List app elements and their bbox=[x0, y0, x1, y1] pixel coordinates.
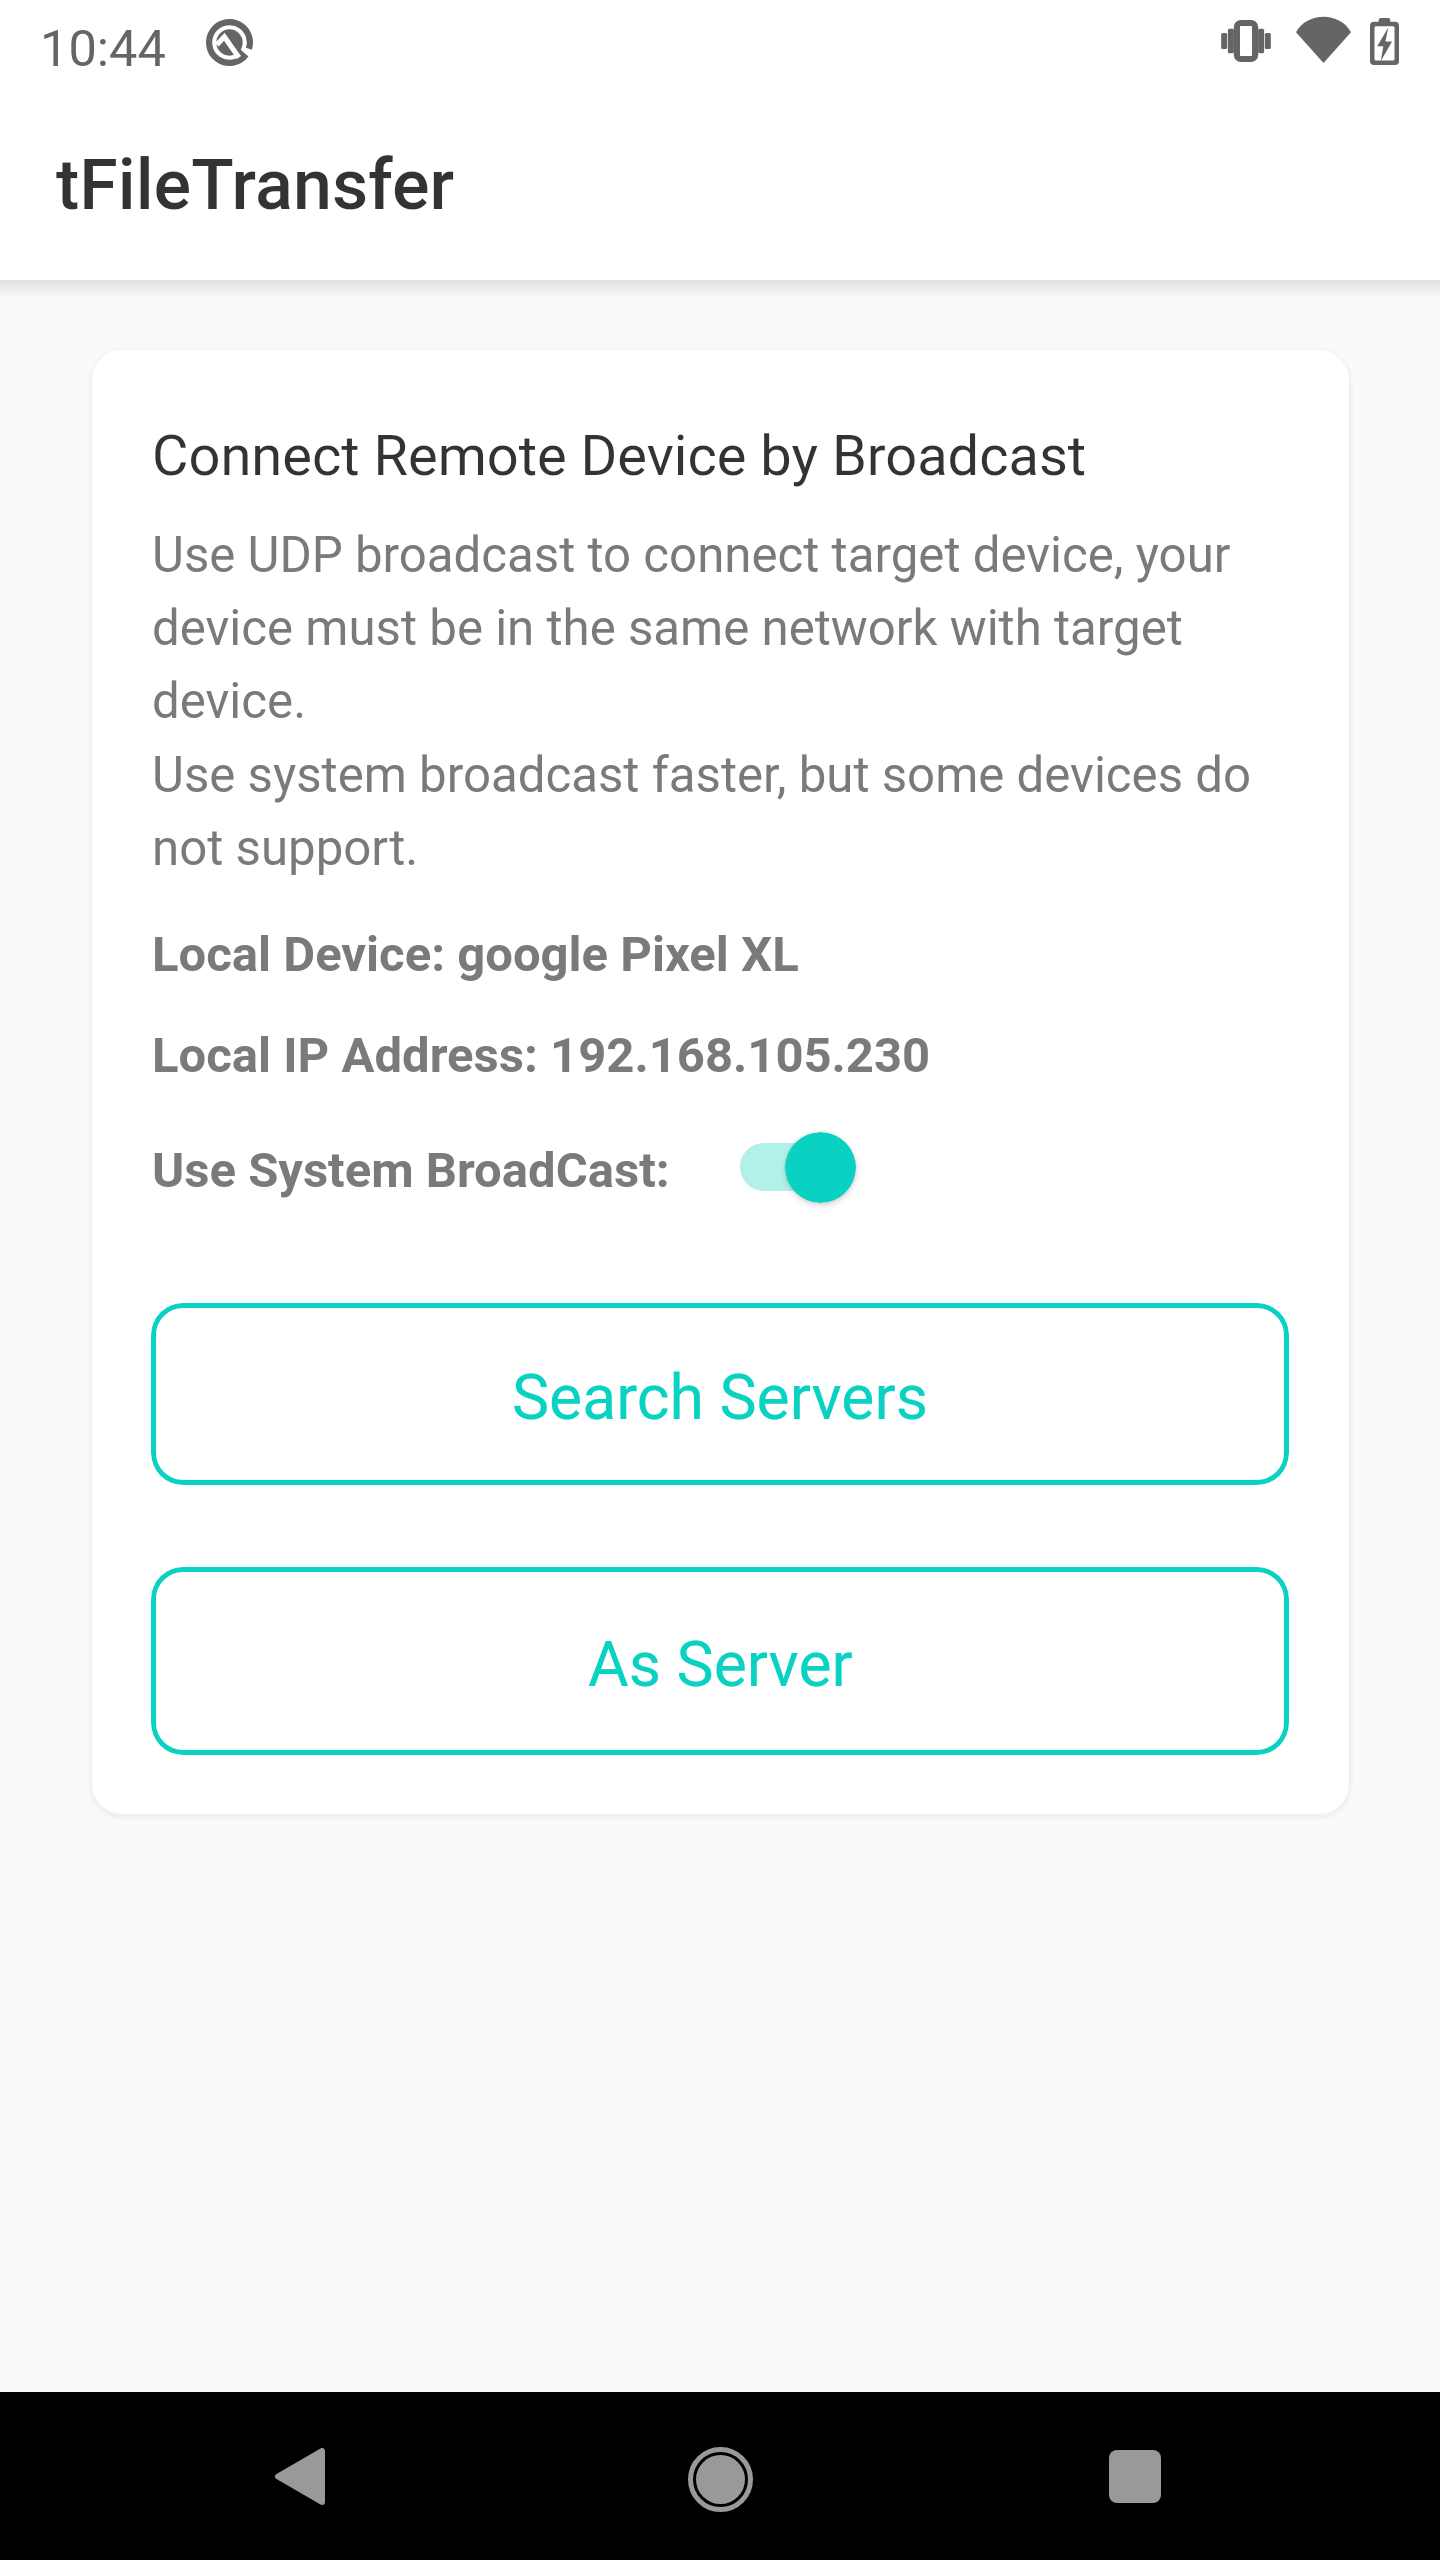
staticText: Use UDP broadcast to connect target devi… bbox=[152, 526, 1231, 584]
staticText: device. bbox=[152, 672, 307, 730]
button[interactable]: Recent apps bbox=[1015, 2404, 1255, 2548]
button[interactable]: Search Servers bbox=[151, 1303, 1289, 1485]
other: Vibrate bbox=[1222, 23, 1270, 59]
staticText: Local IP Address: 192.168.105.230 bbox=[152, 1027, 931, 1084]
staticText: tFileTransfer bbox=[56, 144, 455, 226]
button[interactable]: Back bbox=[180, 2404, 420, 2548]
other: Wi-Fi bbox=[1296, 19, 1351, 63]
button[interactable]: Use system broadcast toggle bbox=[736, 1131, 864, 1203]
button[interactable]: As Server bbox=[151, 1567, 1289, 1755]
other: Android Q bbox=[206, 19, 253, 66]
staticText: Connect Remote Device by Broadcast bbox=[152, 423, 1087, 489]
staticText: Use System BroadCast: bbox=[152, 1142, 670, 1199]
other: Battery charging bbox=[1370, 18, 1399, 65]
staticText: Search Servers bbox=[512, 1361, 928, 1434]
staticText: device must be in the same network with … bbox=[152, 599, 1183, 657]
staticText: Use system broadcast faster, but some de… bbox=[152, 746, 1252, 804]
staticText: As Server bbox=[588, 1628, 853, 1701]
staticText: 10:44 bbox=[40, 19, 166, 78]
staticText: Local Device: google Pixel XL bbox=[152, 926, 799, 983]
staticText: not support. bbox=[152, 819, 419, 877]
button[interactable]: Home bbox=[600, 2407, 840, 2551]
